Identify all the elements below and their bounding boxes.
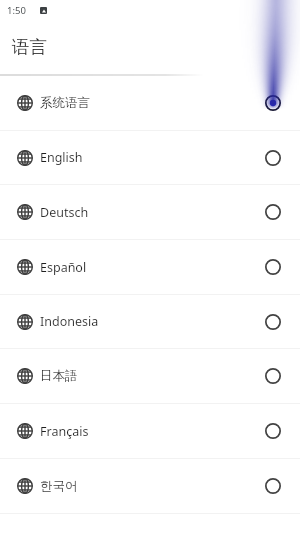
- staticText: English: [40, 149, 83, 166]
- staticText: 语言: [12, 36, 47, 58]
- staticText: 1:50: [7, 4, 26, 17]
- staticText: 日本語: [40, 368, 78, 384]
- staticText: Deutsch: [40, 204, 89, 221]
- button[interactable]: 系统语言: [0, 76, 300, 130]
- staticText: Français: [40, 423, 89, 440]
- button[interactable]: Español: [0, 240, 300, 294]
- button[interactable]: Deutsch: [0, 185, 300, 239]
- button[interactable]: Français: [0, 404, 300, 458]
- staticText: Indonesia: [40, 313, 99, 330]
- button[interactable]: Indonesia: [0, 295, 300, 348]
- button[interactable]: 日本語: [0, 349, 300, 403]
- staticText: 系统语言: [40, 95, 90, 111]
- staticText: 한국어: [40, 478, 78, 494]
- staticText: Español: [40, 259, 87, 276]
- button[interactable]: 한국어: [0, 459, 300, 513]
- button[interactable]: English: [0, 131, 300, 184]
